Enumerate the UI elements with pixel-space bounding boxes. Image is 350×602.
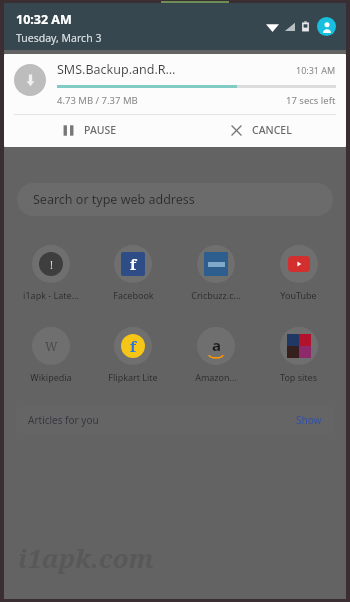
staticText: Articles for you bbox=[28, 413, 99, 427]
staticText: f bbox=[130, 254, 137, 274]
button[interactable]: YouTube bbox=[257, 243, 340, 303]
button[interactable]: Search or type web address bbox=[17, 183, 333, 216]
staticText: W bbox=[45, 338, 58, 354]
button[interactable]: a bbox=[174, 325, 257, 385]
button[interactable]: ! bbox=[10, 243, 92, 303]
button[interactable]: SMS.Backup.and.Restor....apk bbox=[4, 54, 346, 147]
staticText: CANCEL bbox=[252, 123, 292, 137]
button[interactable]: f bbox=[92, 325, 174, 385]
button[interactable]: Account bbox=[317, 17, 336, 36]
staticText: YouTube bbox=[280, 289, 317, 301]
button[interactable]: Top sites bbox=[257, 325, 340, 385]
button[interactable]: W bbox=[10, 325, 92, 385]
staticText: i1apk - Late... bbox=[23, 289, 79, 301]
button[interactable]: PAUSE bbox=[4, 115, 175, 145]
staticText: Amazon... bbox=[195, 371, 237, 383]
staticText: Top sites bbox=[280, 371, 317, 383]
staticText: 10:32 AM bbox=[16, 11, 72, 28]
staticText: Facebook bbox=[113, 289, 154, 301]
staticText: Cricbuzz.c... bbox=[191, 289, 241, 301]
staticText: SMS.Backup.and.Restor....apk bbox=[57, 61, 176, 78]
staticText: a bbox=[212, 335, 221, 355]
staticText: ! bbox=[50, 257, 53, 272]
staticText: Flipkart Lite bbox=[108, 371, 158, 383]
staticText: Search or type web address bbox=[33, 191, 195, 208]
staticText: i1apk.com bbox=[18, 540, 154, 575]
staticText: 4.73 MB / 7.37 MB bbox=[57, 94, 138, 107]
staticText: 17 secs left bbox=[286, 94, 336, 107]
staticText: Tuesday, March 3 bbox=[16, 31, 102, 45]
staticText: 10:31 AM bbox=[296, 64, 336, 76]
staticText: Wikipedia bbox=[30, 371, 72, 383]
staticText: f bbox=[130, 336, 137, 356]
staticText: PAUSE bbox=[84, 123, 117, 137]
staticText: Show bbox=[296, 413, 322, 427]
button[interactable]: Articles for you bbox=[16, 407, 334, 433]
button[interactable]: CANCEL bbox=[175, 115, 346, 145]
button[interactable]: f bbox=[92, 243, 174, 303]
button[interactable]: Cricbuzz.c... bbox=[174, 243, 257, 303]
